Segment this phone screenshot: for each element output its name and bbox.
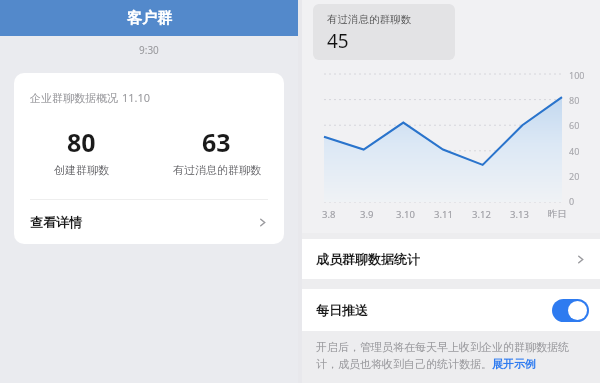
staticText: 成员群聊数据统计 (316, 251, 420, 267)
button[interactable]: Daily push toggle, on (552, 299, 589, 322)
staticText: 60 (569, 119, 580, 131)
staticText: 3.11 (434, 208, 453, 221)
staticText: 45 (327, 28, 349, 54)
staticText: 100 (569, 69, 585, 81)
staticText: 有过消息的群聊数 (173, 163, 261, 177)
staticText: 0 (569, 195, 575, 207)
staticText: 3.8 (322, 208, 336, 221)
staticText: 开启后，管理员将在每天早上收到企业的群聊数据统计，成员也将收到自己的统计数据。展… (316, 340, 588, 371)
button[interactable]: 成员群聊数据统计 (302, 239, 600, 279)
staticText: 查看详情 (30, 214, 82, 230)
button[interactable]: 每日推送 (302, 289, 600, 331)
staticText: 3.9 (360, 208, 374, 221)
staticText: 创建群聊数 (54, 163, 109, 177)
staticText: 3.12 (472, 208, 491, 221)
staticText: 11.10 (122, 90, 151, 105)
staticText: 80 (67, 125, 96, 159)
staticText: 3.10 (396, 208, 415, 221)
staticText: 客户群 (127, 9, 172, 28)
staticText: 40 (569, 145, 580, 157)
staticText: 有过消息的群聊数 (327, 13, 411, 26)
staticText: 企业群聊数据概况 (30, 91, 118, 105)
staticText: 20 (569, 170, 580, 182)
staticText: 9:30 (139, 43, 159, 57)
staticText: 每日推送 (316, 302, 368, 318)
staticText: 昨日 (548, 208, 567, 220)
staticText: 3.13 (510, 208, 529, 221)
staticText: 80 (569, 94, 580, 106)
staticText: 63 (202, 125, 231, 159)
button[interactable]: 查看详情 (14, 200, 284, 244)
